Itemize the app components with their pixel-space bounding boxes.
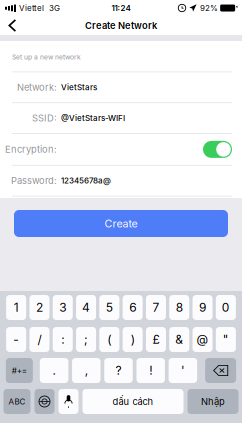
button[interactable]: 2 (29, 295, 49, 320)
staticText: Set up a new network (12, 53, 81, 61)
staticText: 7 (152, 300, 159, 315)
staticText: 8 (176, 300, 183, 315)
button[interactable]: ; (76, 327, 96, 352)
staticText: 3 (59, 300, 66, 315)
staticText: Password: (11, 175, 57, 186)
button[interactable]: Network: (0, 72, 242, 102)
button[interactable]: - (6, 327, 26, 352)
staticText: Viettel (19, 3, 44, 13)
staticText: @ (197, 332, 209, 347)
staticText: ? (115, 363, 121, 378)
button[interactable]: 9 (193, 295, 213, 320)
button[interactable]: Nhập (187, 389, 238, 414)
button[interactable]: 0 (216, 295, 236, 320)
staticText: 11:24 (111, 3, 130, 13)
staticText: SSID: (32, 112, 57, 124)
button[interactable]: ' (169, 358, 197, 383)
button[interactable]: ) (123, 327, 143, 352)
staticText: Nhập (201, 396, 225, 407)
staticText: ! (149, 363, 152, 378)
staticText: ( (107, 332, 111, 347)
button[interactable]: . (40, 358, 68, 383)
staticText: 12345678a@ (61, 176, 111, 186)
staticText: ; (84, 332, 88, 347)
button[interactable]: Delete (205, 358, 236, 383)
button[interactable]: 4 (76, 295, 96, 320)
button[interactable]: 7 (146, 295, 166, 320)
staticText: Create Network (85, 20, 157, 31)
button[interactable]: dấu cách (82, 389, 183, 414)
staticText: : (61, 332, 64, 347)
staticText: 3G (49, 3, 60, 13)
button[interactable]: Create (14, 210, 228, 237)
button[interactable]: #+= (6, 358, 33, 383)
button[interactable]: 6 (123, 295, 143, 320)
staticText: ) (131, 332, 135, 347)
staticText: @VietStars-WIFI (61, 113, 125, 123)
staticText: . (53, 363, 56, 378)
button[interactable]: / (29, 327, 49, 352)
button[interactable]: 1 (6, 295, 26, 320)
staticText: VietStars (61, 82, 97, 92)
button[interactable]: & (169, 327, 189, 352)
button[interactable]: Encryption (203, 141, 232, 158)
button[interactable]: Dictate (58, 389, 78, 414)
button[interactable]: Next keyboard (34, 389, 54, 414)
staticText: Create (104, 217, 137, 230)
button[interactable]: ? (104, 358, 133, 383)
staticText: dấu cách (112, 396, 153, 407)
staticText: - (13, 332, 19, 347)
button[interactable]: ! (136, 358, 165, 383)
staticText: 4 (82, 300, 90, 315)
button[interactable]: 5 (99, 295, 119, 320)
button[interactable]: Back (0, 16, 25, 35)
staticText: 92% (200, 3, 218, 13)
staticText: ABC (8, 397, 25, 406)
button[interactable]: : (53, 327, 73, 352)
button[interactable]: " (216, 327, 236, 352)
button[interactable]: ( (99, 327, 119, 352)
staticText: ' (181, 363, 185, 378)
staticText: 5 (106, 300, 113, 315)
button[interactable]: Password: (0, 166, 242, 196)
staticText: 9 (199, 300, 206, 315)
button[interactable]: £ (146, 327, 166, 352)
staticText: 1 (14, 300, 19, 315)
staticText: & (175, 332, 183, 347)
button[interactable]: ABC (3, 389, 30, 414)
staticText: Encryption: (5, 144, 57, 155)
button[interactable]: 3 (53, 295, 73, 320)
button[interactable]: @ (193, 327, 213, 352)
staticText: 6 (129, 300, 136, 315)
button[interactable]: SSID: (0, 103, 242, 133)
staticText: 2 (36, 300, 43, 315)
staticText: Network: (17, 82, 57, 93)
button[interactable]: , (72, 358, 100, 383)
staticText: " (223, 332, 229, 347)
button[interactable]: 8 (169, 295, 189, 320)
staticText: £ (152, 332, 159, 347)
staticText: / (37, 332, 41, 347)
staticText: , (85, 363, 88, 378)
staticText: #+= (12, 366, 27, 375)
staticText: 0 (222, 300, 230, 315)
